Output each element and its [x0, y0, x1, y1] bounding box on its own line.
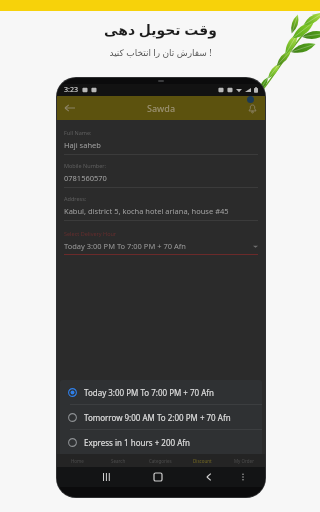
button[interactable]: Tomorrow 9:00 AM To 2:00 PM + 70 Afn	[60, 405, 262, 429]
button[interactable]: Back	[62, 100, 78, 116]
staticText: Sawda	[147, 102, 176, 114]
staticText: Today 3:00 PM To 7:00 PM + 70 Afn	[64, 241, 186, 251]
button[interactable]: Discount	[181, 454, 223, 467]
button[interactable]: Categories	[139, 454, 181, 467]
staticText: Kabul, district 5, kocha hotel ariana, h…	[64, 206, 229, 216]
staticText: Today 3:00 PM To 7:00 PM + 70 Afn	[84, 387, 215, 398]
button[interactable]: More options	[236, 470, 250, 484]
staticText: 3:23	[64, 85, 78, 95]
staticText: My Order	[234, 458, 254, 464]
button[interactable]: Select Delivery Hour	[64, 228, 258, 255]
button[interactable]: Home	[149, 468, 167, 486]
button[interactable]: Full Name:	[64, 129, 258, 162]
button[interactable]: Address:	[64, 195, 258, 228]
staticText: Select Delivery Hour	[64, 230, 117, 237]
button[interactable]: Back	[200, 468, 218, 486]
staticText: Express in 1 hours + 200 Afn	[84, 437, 190, 448]
staticText: سفارش تان را انتخاب کنید !	[109, 46, 212, 58]
button[interactable]: Today 3:00 PM To 7:00 PM + 70 Afn	[60, 380, 262, 404]
button[interactable]: Home	[57, 454, 98, 467]
staticText: Tomorrow 9:00 AM To 2:00 PM + 70 Afn	[84, 412, 231, 423]
button[interactable]: Mobile Number:	[64, 162, 258, 195]
staticText: Full Name:	[64, 129, 92, 136]
staticText: Discount	[193, 458, 212, 464]
staticText: Search	[111, 458, 126, 464]
button[interactable]: Express in 1 hours + 200 Afn	[60, 430, 262, 454]
staticText: Mobile Number:	[64, 162, 107, 169]
button[interactable]: My Order	[223, 454, 265, 467]
button[interactable]: Notifications	[244, 100, 260, 116]
staticText: Categories	[149, 458, 172, 464]
staticText: 0781560570	[64, 173, 107, 183]
staticText: Haji saheb	[64, 140, 101, 150]
staticText: Home	[71, 458, 84, 464]
button[interactable]: Recents	[98, 468, 116, 486]
button[interactable]: Search	[98, 454, 139, 467]
staticText: Address:	[64, 195, 87, 202]
staticText: وقت تحویل دهی	[104, 20, 217, 39]
